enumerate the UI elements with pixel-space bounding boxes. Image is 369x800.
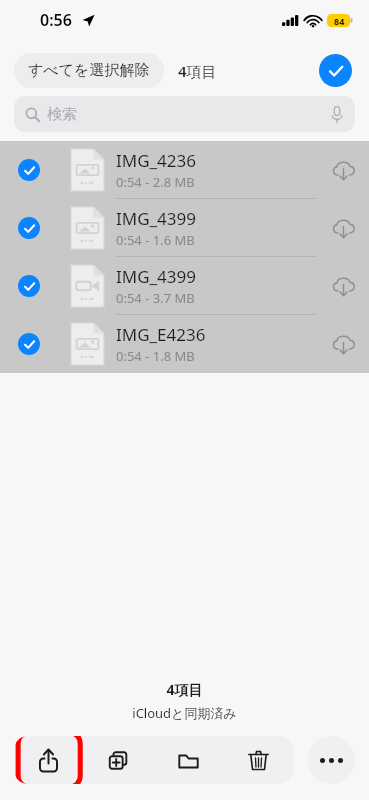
staticText: 4項目 (166, 680, 203, 699)
staticText: 0:54 - 3.7 MB (116, 289, 195, 307)
button[interactable]: Download (317, 199, 369, 257)
staticText: IMG_4399 (116, 265, 197, 288)
button[interactable]: Move to folder (153, 736, 223, 784)
staticText: 検索 (47, 105, 77, 124)
staticText: 0:54 - 1.6 MB (116, 231, 195, 249)
button[interactable]: More (307, 736, 355, 784)
button[interactable]: 検索 (14, 96, 355, 132)
staticText: 84 (334, 15, 345, 27)
button[interactable]: IMG_4236 (0, 141, 369, 199)
staticText: すべてを選択解除 (28, 61, 150, 80)
button[interactable]: Done (319, 54, 352, 87)
staticText: 0:54 - 2.8 MB (116, 173, 195, 191)
button[interactable]: Duplicate (83, 736, 153, 784)
staticText: iCloudと同期済み (132, 704, 237, 722)
button[interactable]: IMG_4399 (0, 199, 369, 257)
button[interactable]: Download (317, 141, 369, 199)
button[interactable]: IMG_E4236 (0, 315, 369, 373)
staticText: 0:54 - 1.8 MB (116, 347, 195, 365)
other: Dictate (331, 106, 343, 123)
button[interactable]: Share (14, 736, 83, 784)
button[interactable]: すべてを選択解除 (14, 53, 164, 88)
staticText: IMG_E4236 (116, 323, 206, 346)
button[interactable]: IMG_4399 (0, 257, 369, 315)
button[interactable]: Delete (223, 736, 293, 784)
staticText: IMG_4399 (116, 207, 197, 230)
button[interactable]: Download (317, 315, 369, 373)
button[interactable]: Download (317, 257, 369, 315)
staticText: 4項目 (178, 61, 217, 81)
staticText: 0:56 (40, 9, 72, 31)
staticText: IMG_4236 (116, 149, 197, 172)
